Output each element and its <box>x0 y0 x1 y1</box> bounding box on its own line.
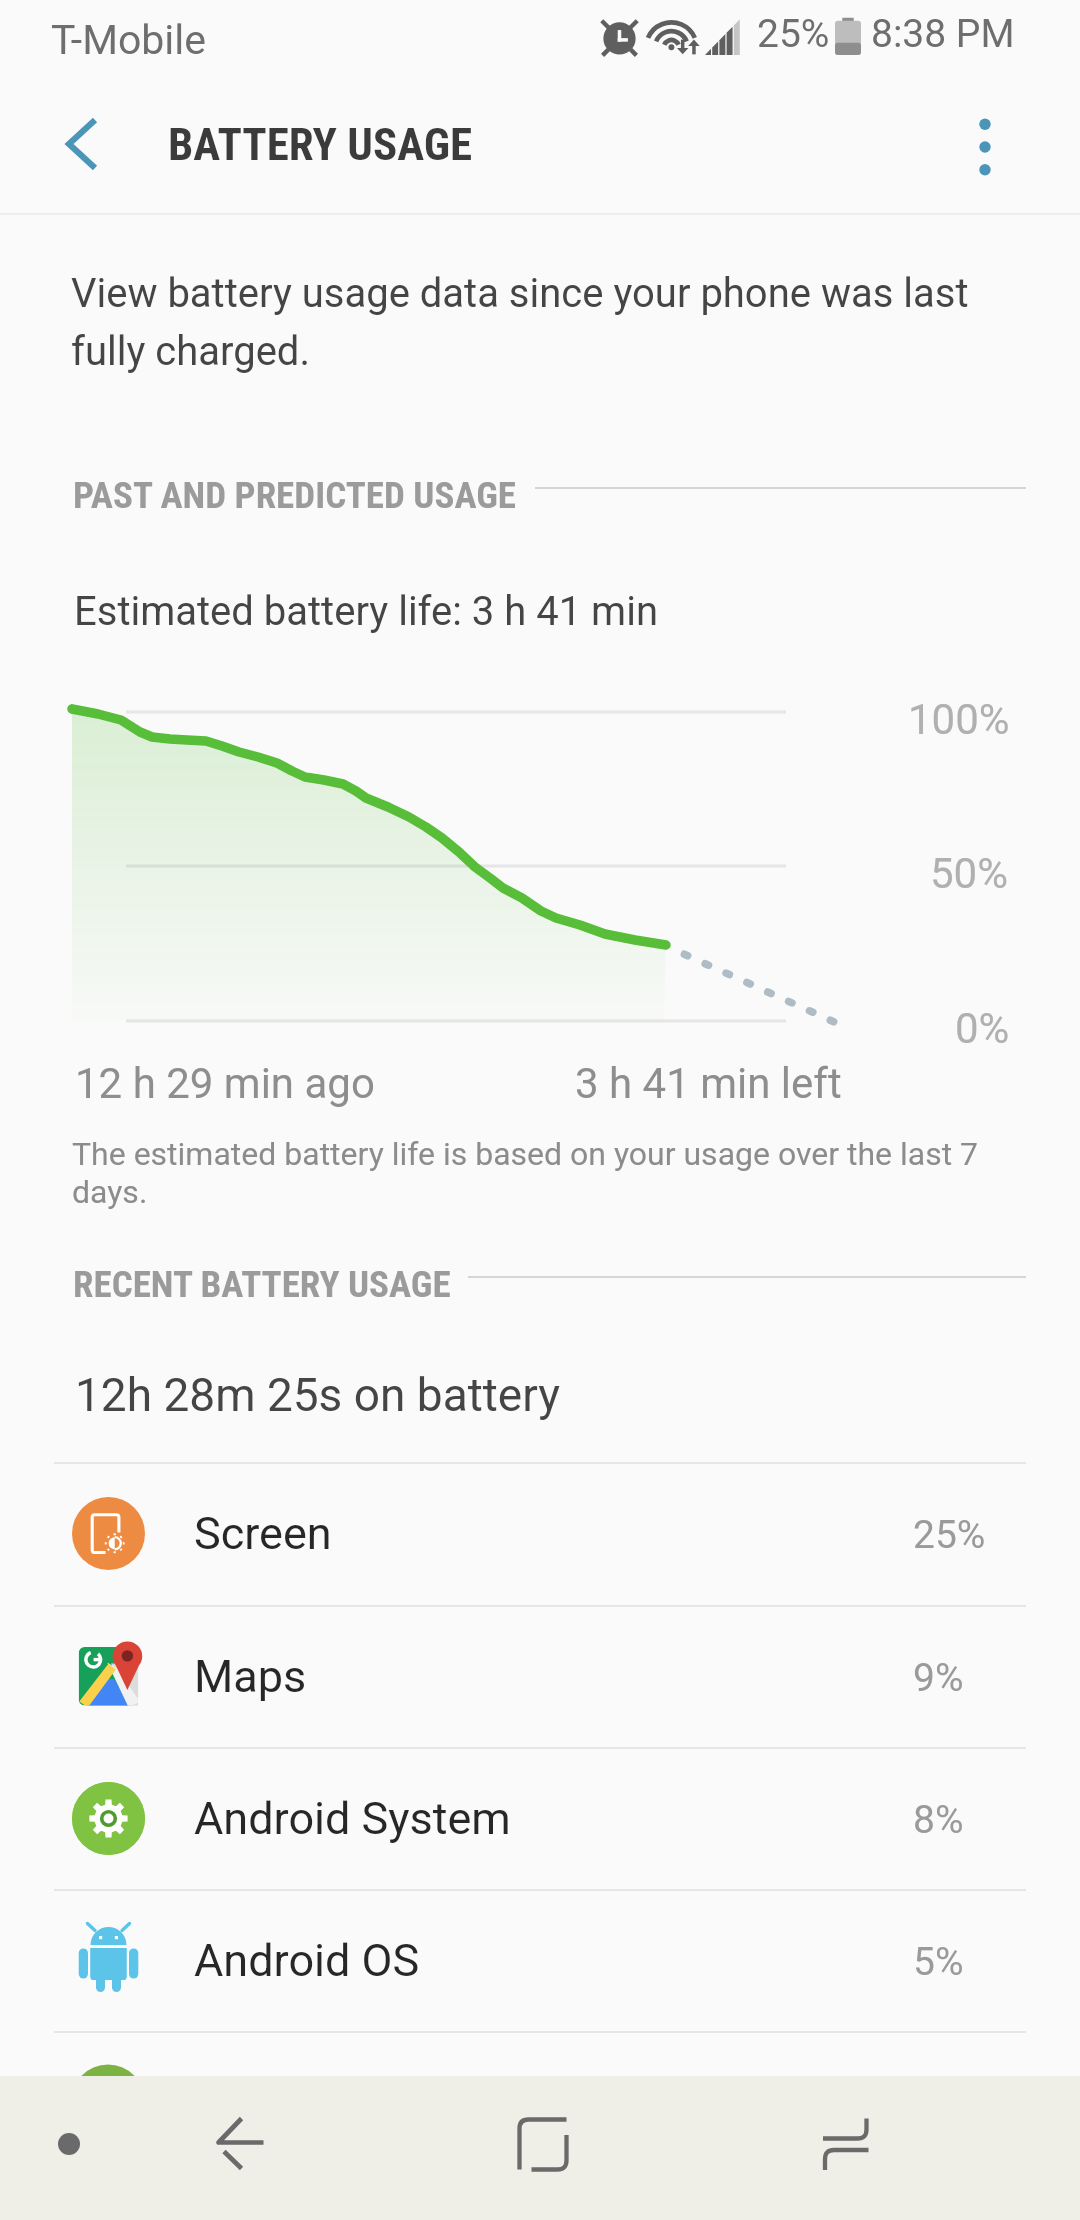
staticText: PAST AND PREDICTED USAGE <box>73 474 516 517</box>
staticText: 12h 28m 25s on battery <box>75 1368 560 1422</box>
button[interactable]: Android OS <box>0 1889 1080 2031</box>
staticText: 12 h 29 min ago <box>75 1059 375 1108</box>
staticText: Android OS <box>194 1934 420 1987</box>
staticText: 100% <box>908 695 1010 744</box>
staticText: RECENT BATTERY USAGE <box>73 1263 451 1306</box>
button[interactable]: Recents <box>770 2076 940 2220</box>
staticText: Android System <box>194 1792 511 1845</box>
button[interactable]: Home <box>460 2076 630 2220</box>
staticText: 9% <box>913 1655 964 1701</box>
staticText: 5% <box>913 1939 964 1985</box>
staticText: View battery usage data since your phone… <box>71 270 981 375</box>
staticText: 0% <box>955 1004 1010 1053</box>
staticText: BATTERY USAGE <box>168 118 473 171</box>
staticText: 3 h 41 min left <box>575 1059 842 1108</box>
staticText: The estimated battery life is based on y… <box>72 1135 997 1211</box>
staticText: 25% <box>757 11 830 57</box>
staticText: T-Mobile <box>51 16 207 64</box>
button[interactable]: Hide navigation bar <box>0 2076 140 2220</box>
button[interactable]: Screen <box>0 1462 1080 1604</box>
button[interactable]: Maps <box>0 1605 1080 1747</box>
staticText: Screen <box>194 1507 332 1560</box>
button[interactable]: Back <box>160 2076 330 2220</box>
button[interactable]: Navigate up <box>30 92 134 196</box>
staticText: 8% <box>913 1797 964 1843</box>
button[interactable]: More options <box>935 95 1035 199</box>
staticText: 25% <box>913 1512 986 1558</box>
staticText: 50% <box>930 849 1008 898</box>
button[interactable]: Android System <box>0 1747 1080 1889</box>
staticText: Estimated battery life: 3 h 41 min <box>74 588 659 635</box>
staticText: Maps <box>194 1650 307 1703</box>
staticText: 8:38 PM <box>871 11 1015 57</box>
